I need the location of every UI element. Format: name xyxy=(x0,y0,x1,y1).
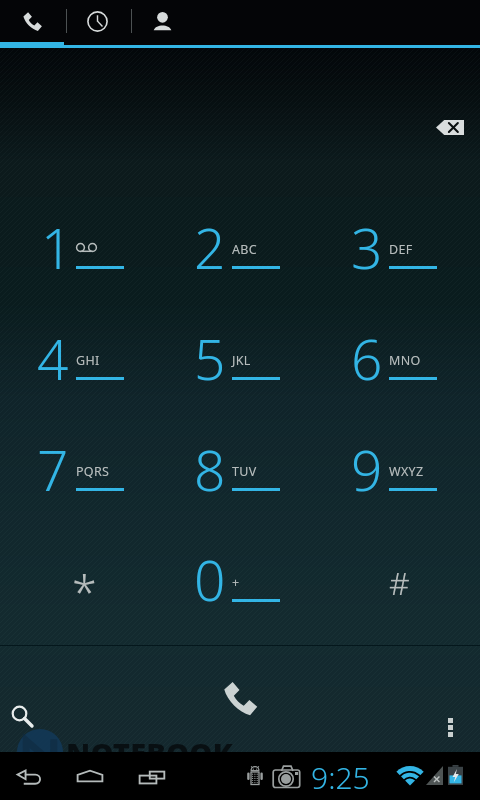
staticText: 7 xyxy=(37,432,69,507)
staticText: 1 xyxy=(41,210,73,285)
staticText: 6 xyxy=(351,321,383,396)
button[interactable] xyxy=(23,527,180,637)
button[interactable]: More options xyxy=(428,698,472,742)
button[interactable]: Dialpad tab xyxy=(0,0,65,42)
button[interactable]: Call xyxy=(0,646,480,752)
staticText: 4 xyxy=(37,321,69,396)
staticText: TUV xyxy=(232,463,257,480)
button[interactable] xyxy=(337,527,480,637)
staticText: NOTEBOOK xyxy=(66,733,233,772)
button[interactable] xyxy=(337,417,480,527)
staticText: 9:25 xyxy=(311,757,370,798)
staticText: 0 xyxy=(194,542,226,617)
button[interactable] xyxy=(337,195,480,305)
button[interactable] xyxy=(23,417,180,527)
staticText: DEF xyxy=(389,241,413,258)
button[interactable]: Contacts tab xyxy=(130,0,195,42)
button[interactable] xyxy=(23,195,180,305)
button[interactable] xyxy=(337,306,480,416)
staticText: 2 xyxy=(194,210,226,285)
button[interactable]: Search xyxy=(8,700,52,744)
staticText: + xyxy=(232,574,240,591)
staticText: GHI xyxy=(76,352,100,369)
staticText: * xyxy=(72,561,97,622)
button[interactable] xyxy=(23,306,180,416)
button[interactable] xyxy=(180,527,337,637)
button[interactable] xyxy=(180,195,337,305)
button[interactable] xyxy=(180,417,337,527)
staticText: # xyxy=(389,561,410,605)
staticText: PQRS xyxy=(76,463,110,480)
staticText: WXYZ xyxy=(389,463,424,480)
staticText: MNO xyxy=(389,352,421,369)
staticText: JKL xyxy=(232,352,251,369)
button[interactable]: Delete xyxy=(419,96,480,158)
button[interactable]: Home xyxy=(68,760,112,796)
button[interactable]: Back xyxy=(8,760,52,796)
staticText: 8 xyxy=(194,432,226,507)
button[interactable] xyxy=(180,306,337,416)
button[interactable]: Call log tab xyxy=(65,0,130,42)
staticText: ABC xyxy=(232,241,257,258)
staticText: 5 xyxy=(194,321,226,396)
button[interactable]: Recent apps xyxy=(130,760,174,796)
staticText: 9 xyxy=(351,432,383,507)
staticText: CENTER xyxy=(134,756,209,778)
staticText: 3 xyxy=(351,210,383,285)
